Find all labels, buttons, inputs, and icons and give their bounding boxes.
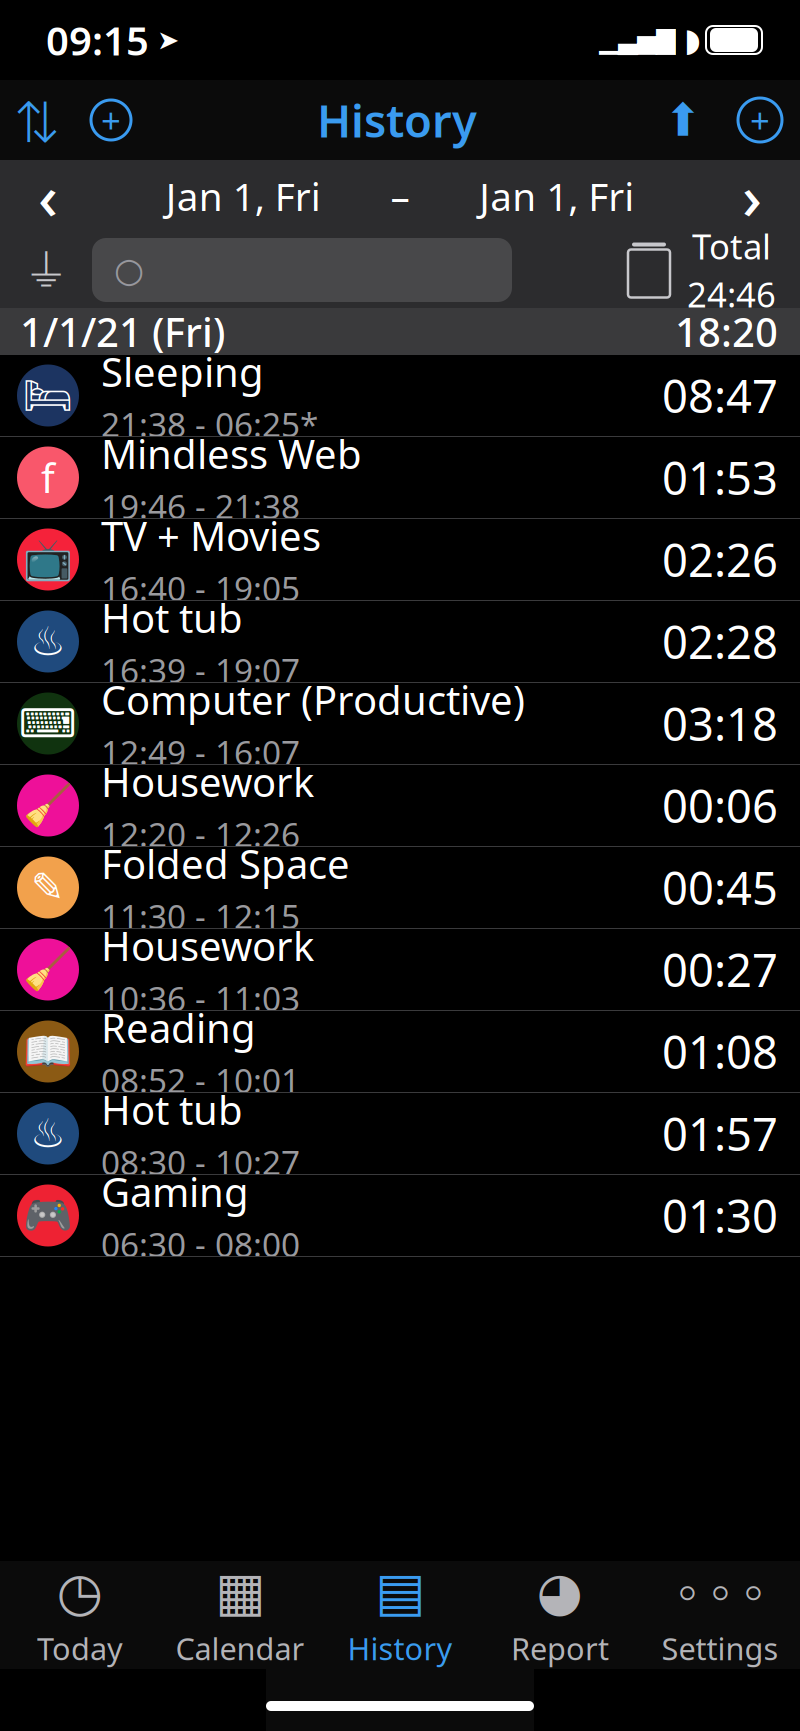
staticText: Report xyxy=(511,1628,609,1669)
staticText: ◕ xyxy=(536,1561,583,1622)
button[interactable]: Previous day xyxy=(0,160,96,232)
staticText: 18:20 xyxy=(675,305,778,358)
button[interactable]: Share xyxy=(646,80,720,160)
staticText: 24:46 xyxy=(687,271,776,317)
staticText: Gaming xyxy=(101,1165,249,1218)
staticText: + xyxy=(101,97,121,143)
staticText: Housework xyxy=(101,755,314,808)
staticText: 16:40 - 19:05 xyxy=(101,566,300,610)
staticText: 1/1/21 (Fri) xyxy=(20,305,225,358)
staticText: 19:46 - 21:38 xyxy=(101,484,300,528)
staticText: Calendar xyxy=(175,1628,304,1669)
button[interactable]: Jan 1, Fri xyxy=(479,170,634,222)
staticText: Jan 1, Fri xyxy=(479,170,634,222)
staticText: 11:30 - 12:15 xyxy=(101,894,300,938)
staticText: 10:36 - 11:03 xyxy=(101,976,300,1020)
staticText: ◗ xyxy=(684,22,701,58)
staticText: 01:53 xyxy=(662,447,778,508)
staticText: 12:20 - 12:26 xyxy=(101,812,300,856)
staticText: ⌨ xyxy=(19,701,77,746)
staticText: Housework xyxy=(101,919,314,972)
staticText: › xyxy=(742,155,762,237)
staticText: Sleeping xyxy=(101,345,264,398)
staticText: 02:28 xyxy=(662,611,778,672)
button[interactable]: 🎮 xyxy=(0,1175,800,1257)
button[interactable]: 📖 xyxy=(0,1011,800,1093)
staticText: ▁▃▅▇ xyxy=(599,26,675,54)
staticText: TV + Movies xyxy=(101,509,321,562)
button[interactable]: ♨ xyxy=(0,1093,800,1175)
staticText: Jan 1, Fri xyxy=(166,170,321,222)
staticText: 16:39 - 19:07 xyxy=(101,648,300,692)
staticText: ⇅ xyxy=(13,88,60,152)
button[interactable]: Sort xyxy=(0,80,74,160)
staticText: 🛏 xyxy=(22,373,73,418)
staticText: ‹ xyxy=(38,155,58,237)
staticText: 21:38 - 06:25* xyxy=(101,402,318,446)
staticText: – xyxy=(390,170,409,222)
staticText: f xyxy=(41,451,55,504)
staticText: Reading xyxy=(101,1001,256,1054)
staticText: Folded Space xyxy=(101,837,350,890)
staticText: 02:26 xyxy=(662,529,778,590)
staticText: ○ xyxy=(114,250,144,290)
staticText: ⬆ xyxy=(664,94,702,146)
staticText: 🧹 xyxy=(23,783,73,828)
staticText: 03:18 xyxy=(662,693,778,754)
button[interactable]: Next day xyxy=(704,160,800,232)
button[interactable]: 🧹 xyxy=(0,929,800,1011)
button[interactable]: ⌨ xyxy=(0,683,800,765)
staticText: 🎮 xyxy=(23,1193,73,1238)
button[interactable]: ♨ xyxy=(0,601,800,683)
staticText: ✎ xyxy=(31,865,65,910)
staticText: ⏚ xyxy=(23,244,68,296)
button[interactable]: ◕ xyxy=(480,1561,640,1669)
button[interactable]: f xyxy=(0,437,800,519)
staticText: ◷ xyxy=(56,1561,103,1622)
staticText: ∘∘∘ xyxy=(670,1561,769,1622)
staticText: 06:30 - 08:00 xyxy=(101,1222,300,1266)
staticText: 00:06 xyxy=(662,775,778,836)
button[interactable]: ▤ xyxy=(320,1561,480,1669)
button[interactable]: ▦ xyxy=(160,1561,320,1669)
button[interactable]: 📺 xyxy=(0,519,800,601)
staticText: 🧹 xyxy=(23,947,73,992)
staticText: Hot tub xyxy=(101,591,243,644)
staticText: 📺 xyxy=(23,537,73,582)
button[interactable]: ∘∘∘ xyxy=(640,1561,800,1669)
staticText: Today xyxy=(37,1628,123,1669)
button[interactable]: Notes xyxy=(611,232,687,308)
staticText: 08:47 xyxy=(662,365,778,426)
staticText: + xyxy=(750,97,770,143)
staticText: 01:08 xyxy=(662,1021,778,1082)
staticText: 00:27 xyxy=(662,939,778,1000)
staticText: ▤ xyxy=(375,1561,425,1622)
staticText: 09:15 xyxy=(46,13,149,66)
button[interactable]: 🧹 xyxy=(0,765,800,847)
staticText: History xyxy=(347,1628,452,1669)
staticText: ♨ xyxy=(30,619,66,664)
staticText: ♨ xyxy=(30,1111,66,1156)
button[interactable]: ✎ xyxy=(0,847,800,929)
button[interactable]: Add entry xyxy=(720,80,800,160)
staticText: 12:49 - 16:07 xyxy=(101,730,300,774)
staticText: Total xyxy=(692,223,771,269)
staticText: Computer (Productive) xyxy=(101,673,525,726)
staticText: Settings xyxy=(661,1628,778,1669)
staticText: 00:45 xyxy=(662,857,778,918)
button[interactable]: 🛏 xyxy=(0,355,800,437)
button[interactable]: Filter xyxy=(0,232,92,308)
button[interactable]: ◷ xyxy=(0,1561,160,1669)
button[interactable]: Jan 1, Fri xyxy=(166,170,321,222)
staticText: Hot tub xyxy=(101,1083,243,1136)
staticText: Mindless Web xyxy=(101,427,362,480)
staticText: 01:30 xyxy=(662,1185,778,1246)
button[interactable]: Zoom xyxy=(74,80,148,160)
staticText: History xyxy=(317,90,477,150)
staticText: 08:52 - 10:01 xyxy=(101,1058,300,1102)
staticText: 08:30 - 10:27 xyxy=(101,1140,300,1184)
staticText: ➤ xyxy=(157,25,179,55)
staticText: ▦ xyxy=(215,1561,265,1622)
staticText: 📖 xyxy=(23,1029,73,1074)
button[interactable]: ○ xyxy=(92,238,512,302)
